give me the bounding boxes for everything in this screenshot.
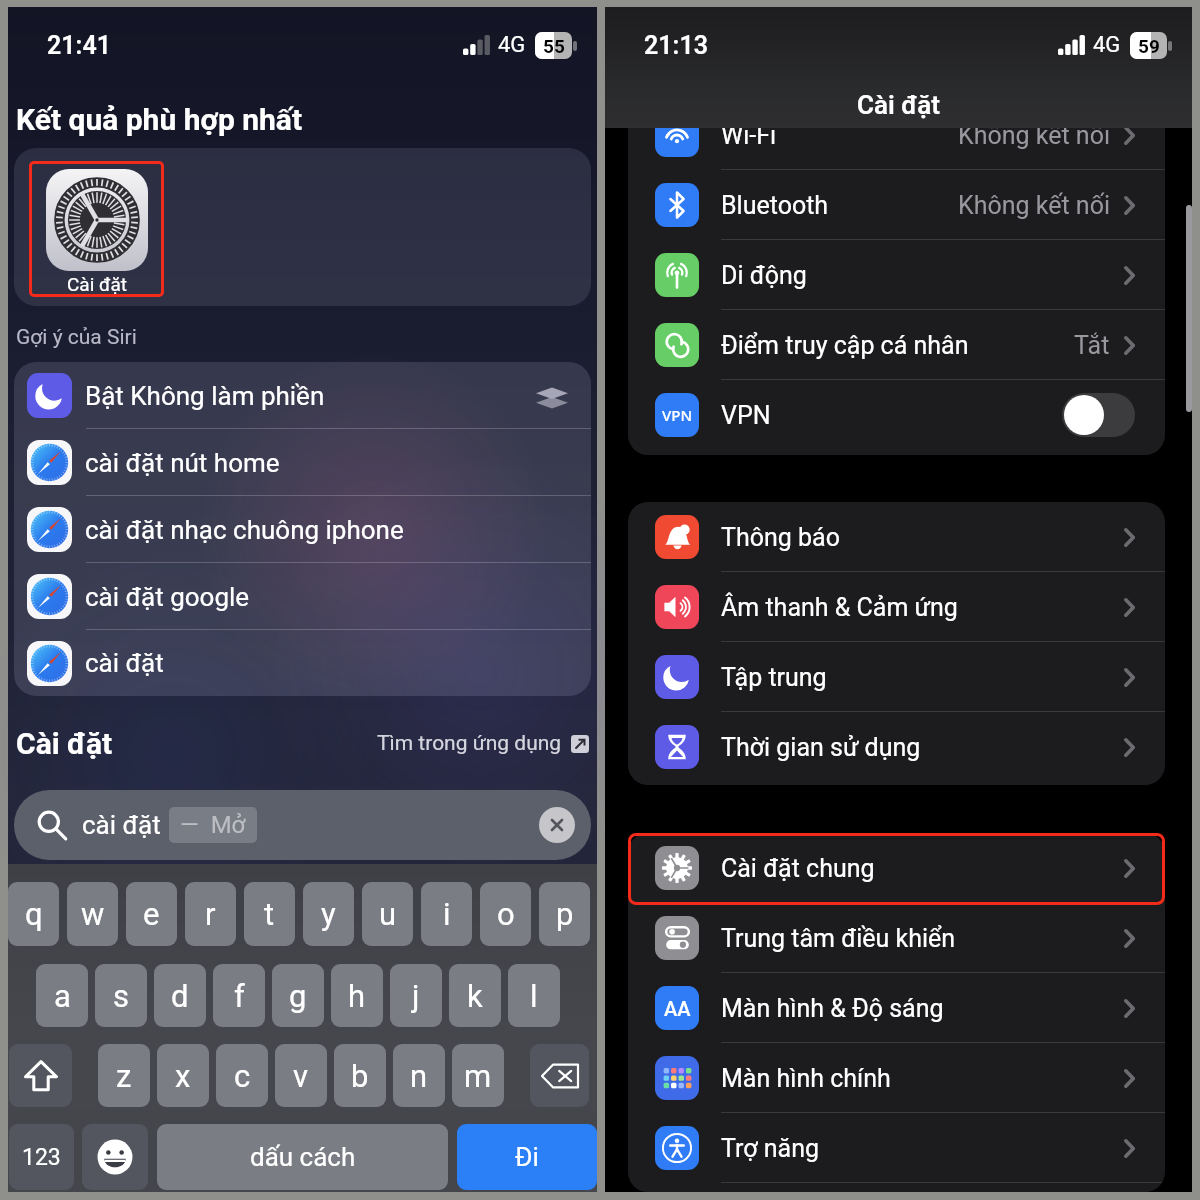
button[interactable]: Trung tâm điều khiển — [628, 903, 1165, 973]
staticText: z — [116, 1058, 132, 1094]
staticText: — Mở — [180, 811, 246, 839]
button[interactable]: Mở ứng dụng Cài đặt — [29, 161, 164, 297]
button[interactable]: Bluetooth — [628, 170, 1165, 240]
button[interactable]: Tìm trong ứng dụng — [377, 731, 589, 756]
staticText: Trợ năng — [721, 1134, 819, 1163]
button[interactable]: a — [36, 964, 88, 1027]
button[interactable]: cài đặt nhạc chuông iphone — [14, 496, 591, 563]
button[interactable]: cài đặt — [14, 630, 591, 696]
staticText: Cài đặt — [857, 90, 941, 120]
staticText: g — [289, 978, 307, 1014]
staticText: m — [464, 1058, 492, 1094]
staticText: u — [379, 896, 397, 932]
staticText: Kết quả phù hợp nhất — [16, 102, 303, 137]
button[interactable]: VPN — [628, 380, 1165, 450]
button[interactable]: o — [480, 882, 531, 946]
button[interactable]: z — [98, 1044, 150, 1107]
button[interactable]: d — [154, 964, 206, 1027]
staticText: AA — [664, 997, 691, 1020]
button[interactable]: Clear — [539, 807, 575, 843]
button[interactable]: h — [331, 964, 383, 1027]
button[interactable]: s — [95, 964, 147, 1027]
button[interactable]: Thông báo — [628, 502, 1165, 572]
button[interactable]: Bật Không làm phiền — [14, 362, 591, 429]
staticText: r — [205, 896, 216, 932]
button[interactable]: Backspace — [530, 1044, 589, 1107]
button[interactable]: q — [8, 882, 59, 946]
button[interactable]: Emoji — [82, 1124, 148, 1190]
staticText: VPN — [721, 401, 771, 430]
staticText: Trung tâm điều khiển — [721, 924, 956, 953]
button[interactable]: AA — [628, 973, 1165, 1043]
button[interactable]: Shift — [9, 1044, 72, 1107]
staticText: Không kết nối — [958, 191, 1110, 220]
button[interactable]: 123 — [9, 1124, 74, 1190]
button[interactable]: Điểm truy cập cá nhân — [628, 310, 1165, 380]
button[interactable]: n — [393, 1044, 445, 1107]
button[interactable]: p — [539, 882, 590, 946]
button[interactable]: Tập trung — [628, 642, 1165, 712]
staticText: i — [443, 896, 451, 932]
button[interactable]: v — [275, 1044, 327, 1107]
staticText: Thời gian sử dụng — [721, 733, 921, 762]
staticText: Cài đặt — [16, 726, 113, 761]
staticText: o — [497, 896, 515, 932]
staticText: k — [467, 978, 483, 1014]
staticText: c — [234, 1058, 251, 1094]
button[interactable]: cài đặt nút home — [14, 429, 591, 496]
staticText: cài đặt google — [85, 582, 250, 612]
button[interactable]: Wi-Fi — [628, 100, 1165, 170]
staticText: 123 — [22, 1144, 61, 1171]
staticText: s — [113, 978, 129, 1014]
button[interactable]: x — [157, 1044, 209, 1107]
staticText: Âm thanh & Cảm ứng — [721, 593, 958, 622]
button[interactable]: b — [334, 1044, 386, 1107]
button[interactable]: u — [362, 882, 413, 946]
staticText: v — [293, 1058, 309, 1094]
button[interactable]: Di động — [628, 240, 1165, 310]
staticText: j — [412, 978, 420, 1014]
button[interactable]: cài đặt — [14, 790, 591, 860]
staticText: a — [54, 978, 71, 1014]
button[interactable]: y — [303, 882, 354, 946]
button[interactable]: r — [185, 882, 236, 946]
staticText: Bluetooth — [721, 191, 829, 220]
button[interactable]: m — [452, 1044, 504, 1107]
button[interactable]: dấu cách — [157, 1124, 448, 1190]
button[interactable]: Âm thanh & Cảm ứng — [628, 572, 1165, 642]
button[interactable]: VPN toggle — [1062, 393, 1135, 437]
staticText: Tắt — [1074, 331, 1110, 360]
button[interactable]: f — [213, 964, 265, 1027]
staticText: n — [410, 1058, 428, 1094]
staticText: cài đặt nút home — [85, 448, 280, 478]
staticText: 4G — [498, 32, 526, 58]
staticText: 21:13 — [644, 31, 708, 60]
button[interactable]: w — [67, 882, 118, 946]
staticText: h — [348, 978, 366, 1014]
button[interactable]: k — [449, 964, 501, 1027]
button[interactable]: e — [126, 882, 177, 946]
staticText: Cài đặt — [67, 273, 127, 295]
staticText: e — [143, 896, 160, 932]
button[interactable]: Cài đặt chung — [628, 833, 1165, 905]
button[interactable]: Thời gian sử dụng — [628, 712, 1165, 782]
button[interactable]: c — [216, 1044, 268, 1107]
button[interactable]: l — [508, 964, 560, 1027]
staticText: y — [321, 896, 336, 932]
button[interactable]: t — [244, 882, 295, 946]
button[interactable]: Trợ năng — [628, 1113, 1165, 1183]
button[interactable]: Màn hình chính — [628, 1043, 1165, 1113]
button[interactable]: Đi — [457, 1124, 597, 1190]
staticText: l — [530, 978, 538, 1014]
staticText: x — [175, 1058, 191, 1094]
button[interactable]: Cài đặt chung — [628, 833, 1165, 903]
button[interactable] — [14, 148, 591, 306]
button[interactable]: cài đặt google — [14, 563, 591, 630]
button[interactable]: i — [421, 882, 472, 946]
staticText: Gợi ý của Siri — [16, 325, 137, 350]
button[interactable]: g — [272, 964, 324, 1027]
staticText: Di động — [721, 261, 807, 290]
staticText: 55 — [543, 35, 565, 57]
staticText: b — [351, 1058, 369, 1094]
button[interactable]: j — [390, 964, 442, 1027]
